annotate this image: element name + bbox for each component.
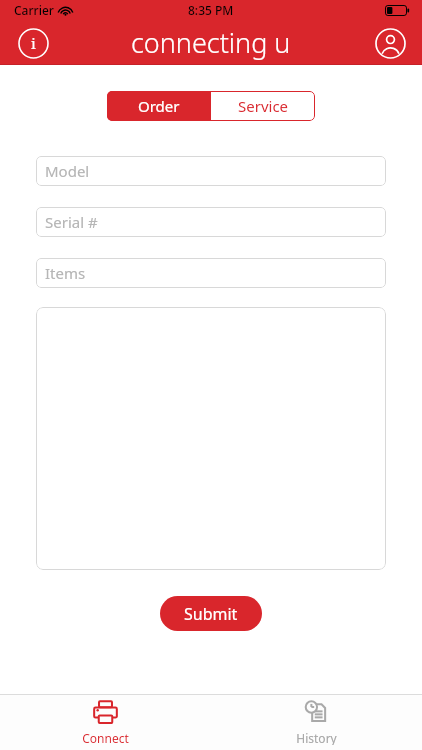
staticText: Service xyxy=(238,96,289,116)
button[interactable] xyxy=(36,307,386,570)
staticText: Model xyxy=(45,161,90,181)
button[interactable]: Items xyxy=(36,258,386,288)
button[interactable]: Service xyxy=(211,91,315,121)
button[interactable]: Order xyxy=(107,91,211,121)
button[interactable]: Model xyxy=(36,156,386,186)
button[interactable]: Serial # xyxy=(36,207,386,237)
staticText: Order xyxy=(138,96,180,116)
button[interactable]: Profile xyxy=(372,25,408,61)
staticText: connecting u xyxy=(131,24,291,61)
staticText: Connect xyxy=(82,730,129,745)
staticText: 8:35 PM xyxy=(188,2,234,18)
button[interactable]: Connect xyxy=(60,695,151,750)
button[interactable]: History xyxy=(274,695,359,750)
staticText: Carrier xyxy=(14,2,54,18)
staticText: Items xyxy=(45,263,86,283)
staticText: i xyxy=(31,33,36,53)
staticText: Serial # xyxy=(45,212,98,232)
staticText: History xyxy=(296,730,337,745)
button[interactable]: Information xyxy=(16,26,50,60)
staticText: Submit xyxy=(184,603,238,625)
button[interactable]: Submit xyxy=(160,596,262,631)
